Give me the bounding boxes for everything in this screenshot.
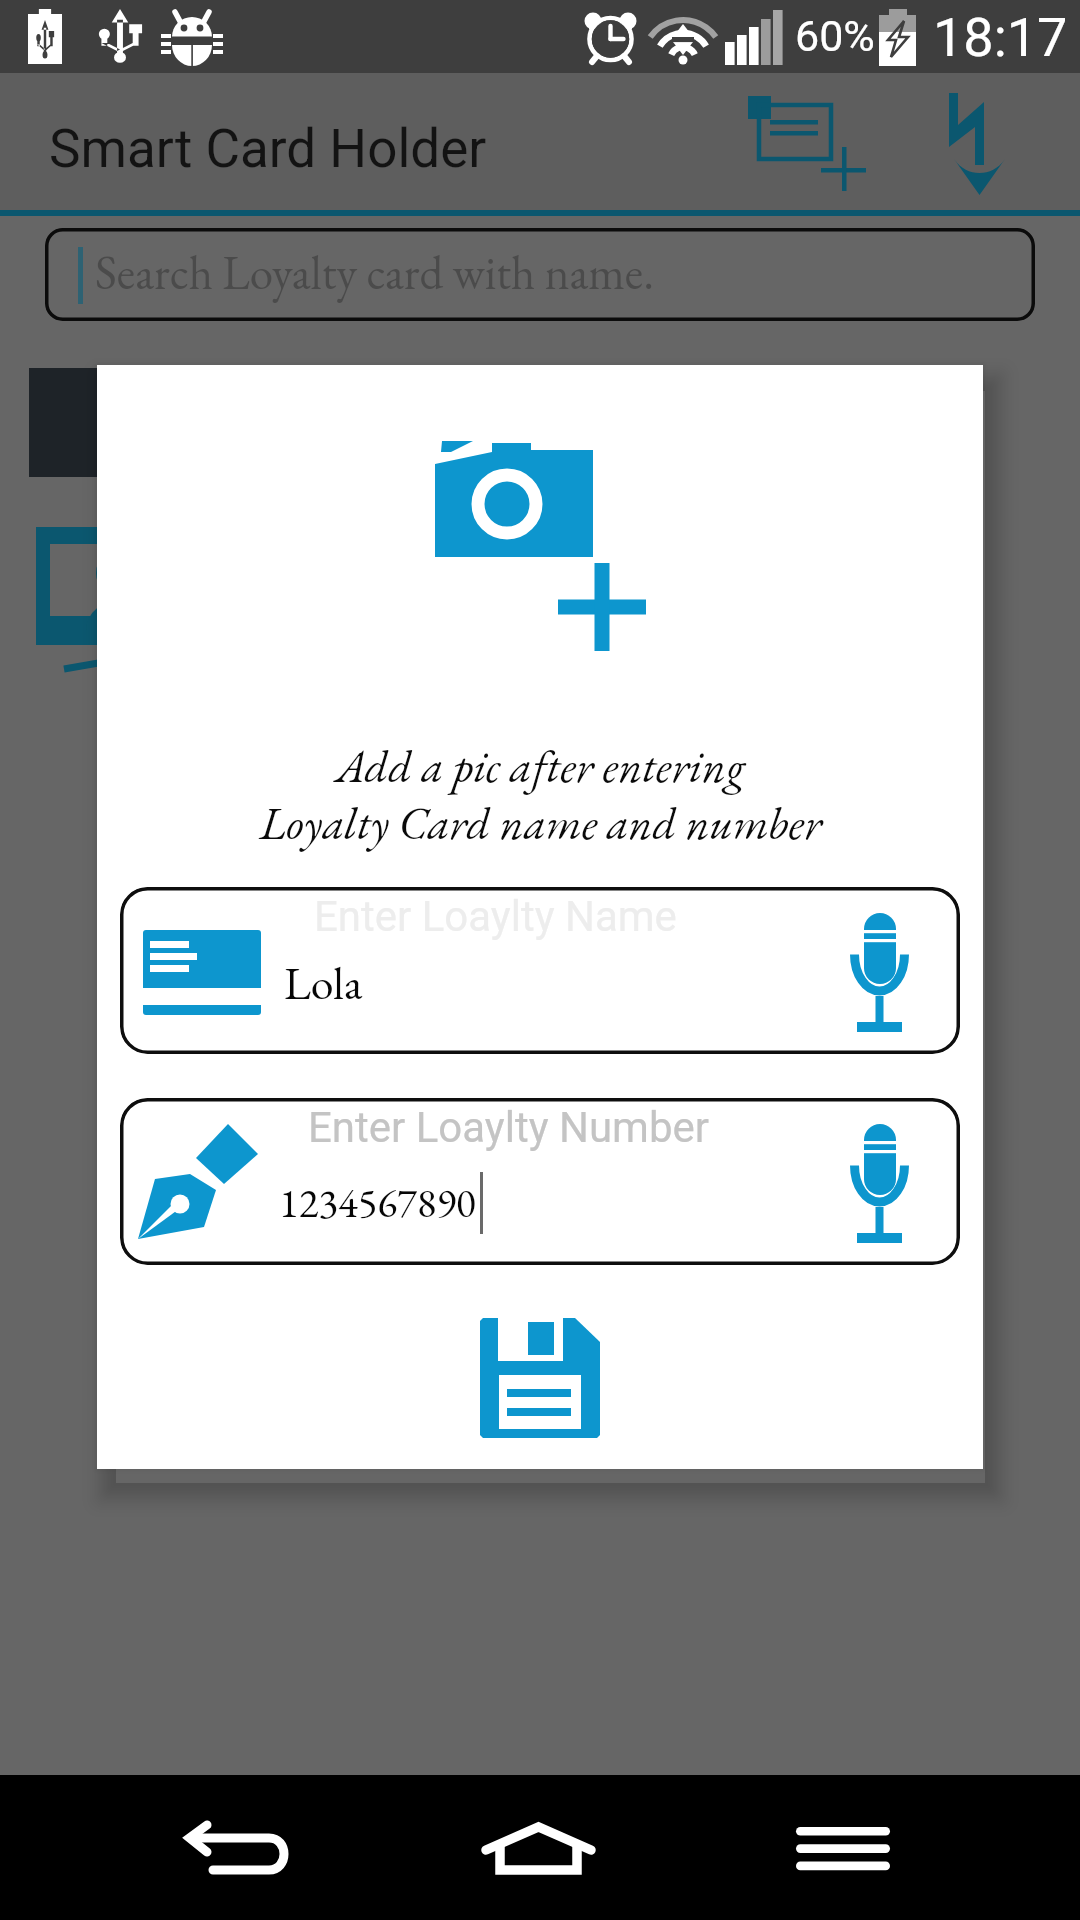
button[interactable]: Menu [776, 1801, 909, 1895]
staticText: Enter Loaylty Number [308, 1103, 709, 1152]
button[interactable]: Voice input [839, 902, 919, 1042]
button[interactable]: Save [480, 1318, 600, 1438]
button[interactable]: Enter Loaylty Name [120, 887, 960, 1054]
button[interactable]: Voice input [839, 1113, 919, 1253]
button[interactable]: Search Loyalty card with name. [45, 228, 1035, 321]
button[interactable]: Home [461, 1801, 616, 1895]
staticText: 18:17 [933, 6, 1068, 69]
staticText: Enter Loaylty Name [314, 892, 677, 941]
button[interactable]: Enter Loaylty Number [120, 1098, 960, 1265]
staticText: Lola [284, 953, 363, 1013]
button[interactable]: Back [165, 1801, 311, 1895]
staticText: 1234567890 [279, 1176, 476, 1230]
staticText: Smart Card Holder [49, 118, 487, 180]
button[interactable]: Add a picture [435, 440, 645, 652]
button[interactable]: Download [929, 73, 1021, 195]
staticText: 60% [795, 11, 875, 61]
staticText: Add a pic after entering Loyalty Card na… [259, 736, 822, 853]
staticText: Search Loyalty card with name. [95, 242, 654, 303]
button[interactable]: Add card [728, 75, 886, 191]
